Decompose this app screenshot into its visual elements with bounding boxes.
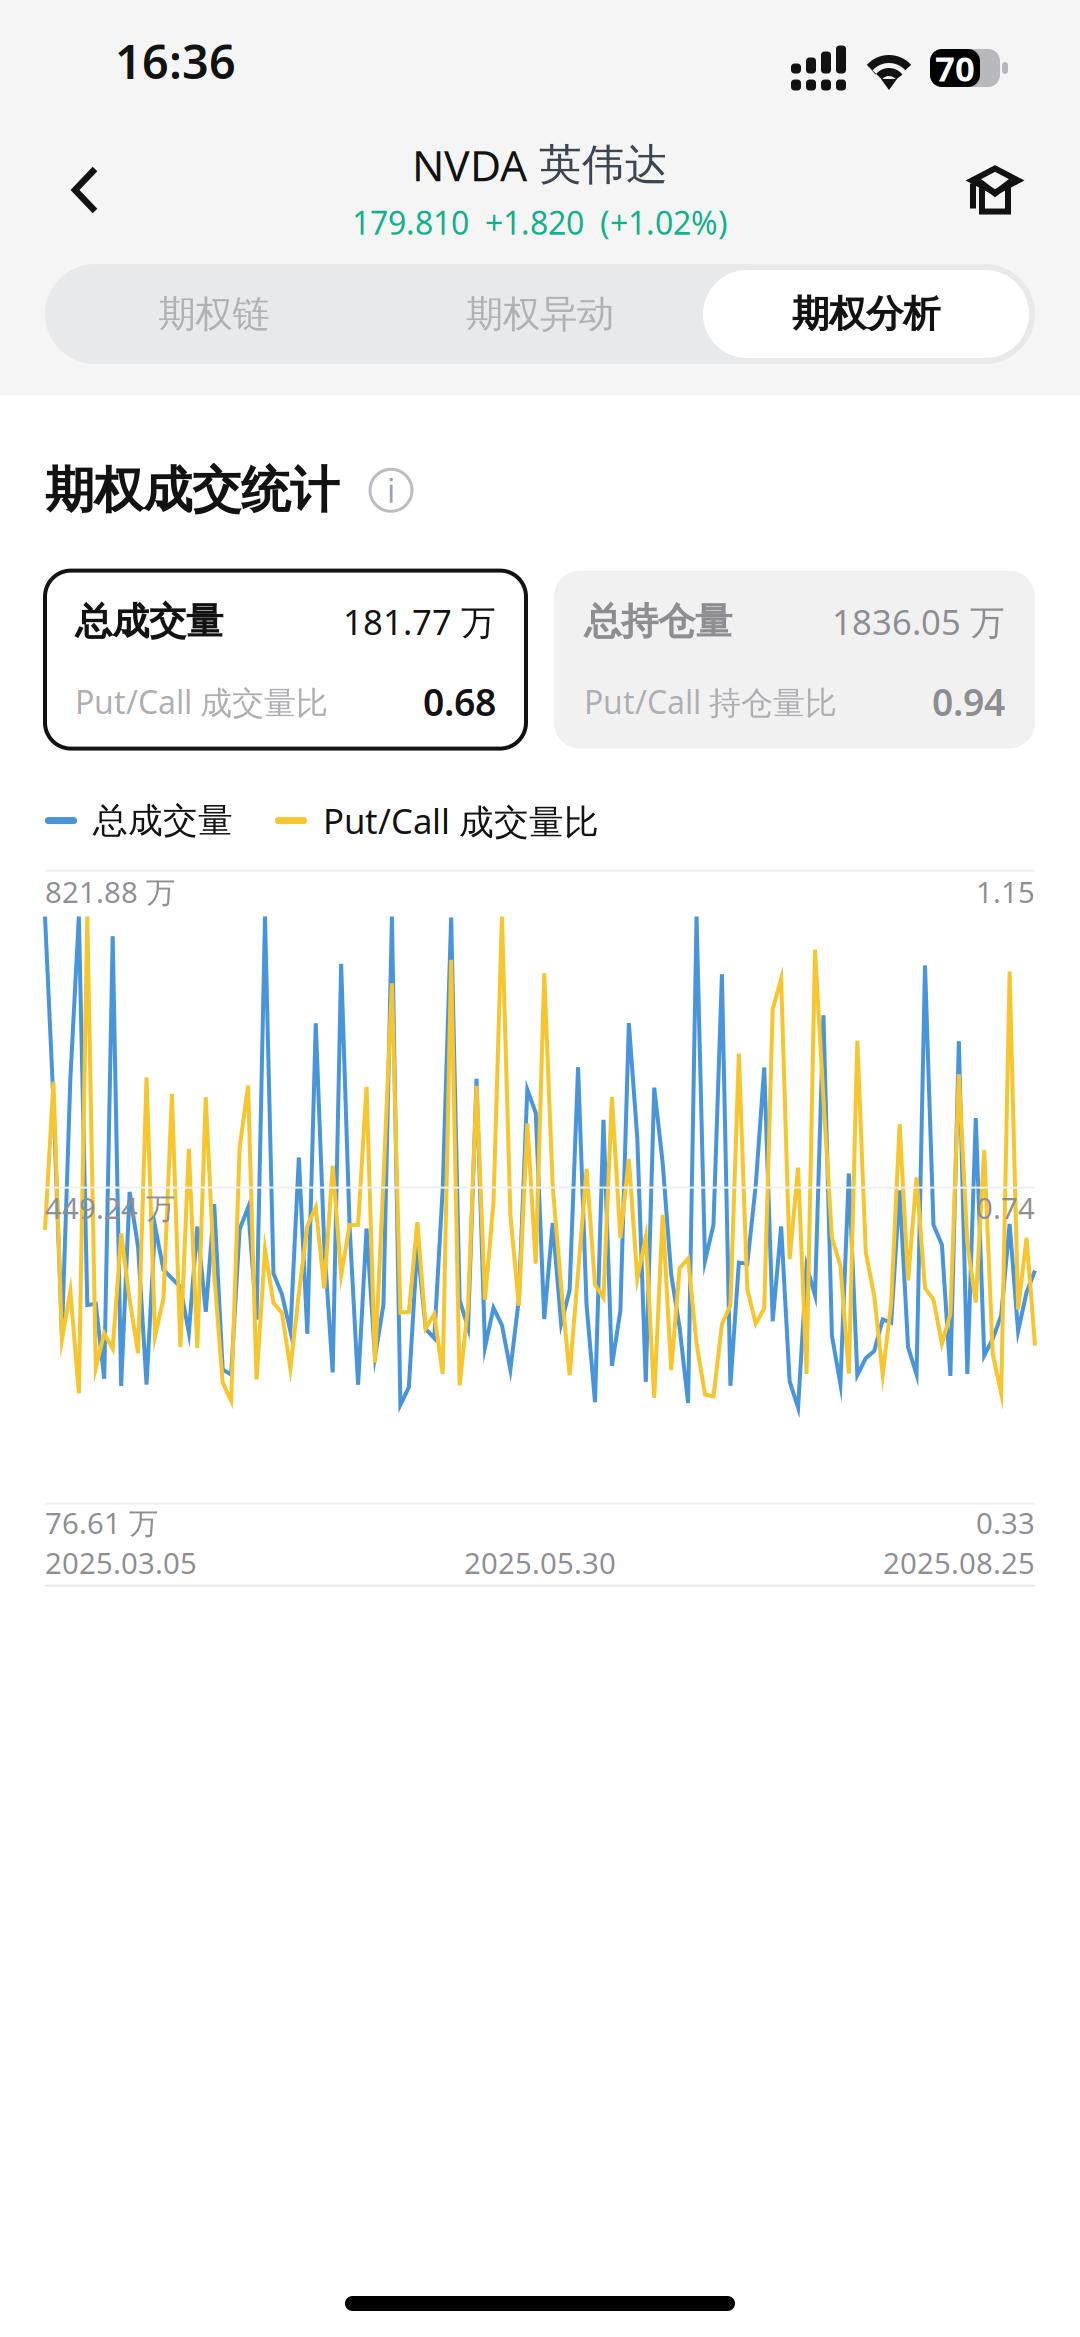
staticText: i (387, 469, 395, 511)
staticText: 总成交量 (93, 799, 233, 842)
button[interactable]: Back (30, 135, 140, 245)
staticText: 821.88 万 (45, 872, 175, 911)
button[interactable]: 总成交量 (45, 571, 526, 749)
staticText: 0.68 (423, 677, 496, 726)
staticText: 总成交量 (75, 599, 223, 645)
button[interactable]: Info (365, 464, 417, 516)
staticText: 179.810 +1.820 (+1.02%) (352, 201, 728, 244)
staticText: 0.33 (976, 1503, 1035, 1542)
staticText: 1836.05 万 (832, 599, 1005, 645)
staticText: NVDA (412, 136, 527, 193)
button[interactable]: 期权链 (51, 270, 377, 358)
staticText: 2025.03.05 (45, 1543, 197, 1582)
staticText: 2025.05.30 (464, 1543, 616, 1582)
button[interactable]: 期权分析 (703, 270, 1029, 358)
staticText: 期权成交统计 (45, 460, 339, 521)
staticText: 0.74 (976, 1188, 1035, 1227)
staticText: 期权异动 (466, 291, 614, 337)
staticText: 期权分析 (792, 291, 940, 337)
button[interactable]: Education (940, 135, 1050, 245)
staticText: 总持仓量 (584, 599, 732, 645)
staticText: 449.24 万 (45, 1188, 175, 1227)
button[interactable]: 期权异动 (377, 270, 703, 358)
staticText: Put/Call 成交量比 (75, 680, 328, 723)
staticText: 76.61 万 (45, 1503, 158, 1542)
staticText: 0.94 (932, 677, 1005, 726)
staticText: 英伟达 (539, 138, 668, 191)
staticText: 2025.08.25 (883, 1543, 1035, 1582)
staticText: 16:36 (115, 30, 236, 92)
staticText: 1.15 (976, 872, 1035, 911)
button[interactable]: 总持仓量 (554, 571, 1035, 749)
staticText: Put/Call 持仓量比 (584, 680, 837, 723)
staticText: 181.77 万 (343, 599, 496, 645)
staticText: Put/Call 成交量比 (323, 797, 599, 844)
staticText: 70 (935, 45, 975, 91)
staticText: 期权链 (158, 291, 269, 337)
